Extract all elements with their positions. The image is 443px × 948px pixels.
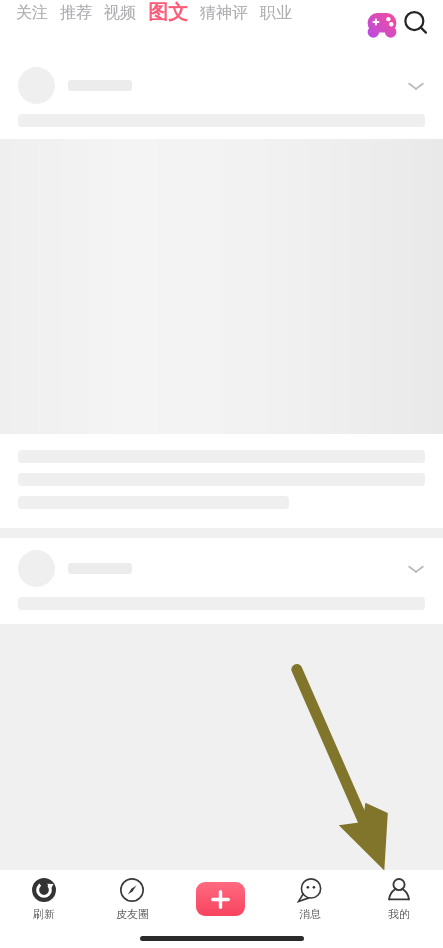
staticText: 刷新 (33, 907, 55, 921)
staticText: 关注 (16, 3, 48, 23)
staticText: 我的 (388, 907, 410, 921)
button[interactable]: 猜神评 (200, 3, 248, 23)
staticText: 视频 (104, 3, 136, 23)
button[interactable]: 图文 (148, 0, 188, 25)
staticText: 职业 (260, 3, 292, 23)
button[interactable]: 我的 (354, 870, 443, 928)
staticText: 皮友圈 (116, 907, 149, 921)
button[interactable]: Expand (403, 73, 429, 99)
button[interactable]: Search (401, 8, 432, 39)
button[interactable]: 推荐 (60, 3, 92, 23)
button[interactable]: Expand (403, 556, 429, 582)
button[interactable]: 消息 (265, 870, 354, 928)
staticText: 图文 (148, 0, 188, 25)
staticText: 推荐 (60, 3, 92, 23)
button[interactable]: 关注 (16, 3, 48, 23)
staticText: 猜神评 (200, 3, 248, 23)
staticText: 消息 (299, 907, 321, 921)
button[interactable]: 职业 (260, 3, 292, 23)
button[interactable]: 刷新 (0, 870, 88, 928)
button[interactable]: Games (366, 7, 398, 39)
button[interactable]: Add post (176, 870, 265, 928)
button[interactable]: 皮友圈 (88, 870, 176, 928)
button[interactable]: 视频 (104, 3, 136, 23)
